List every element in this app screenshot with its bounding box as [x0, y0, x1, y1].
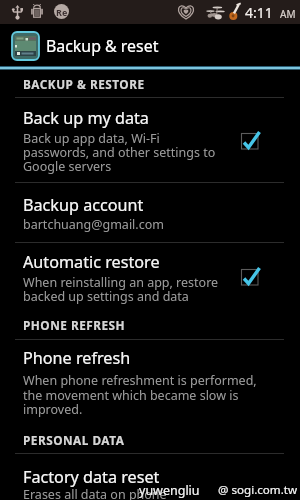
staticText: passwords, and other settings to: [23, 144, 216, 161]
button[interactable]: Backup & reset: [0, 24, 300, 66]
button[interactable]: Toggle Back up my data: [237, 129, 263, 155]
staticText: BACKUP & RESTORE: [23, 76, 145, 92]
staticText: improved.: [23, 401, 83, 418]
staticText: Re: [56, 6, 68, 18]
staticText: Erases all data on phone: [23, 486, 167, 500]
staticText: Back up my data: [23, 107, 149, 129]
staticText: Backup & reset: [46, 35, 159, 57]
staticText: When reinstalling an app, restore: [23, 274, 219, 291]
staticText: PHONE REFRESH: [23, 317, 126, 333]
staticText: backed up settings and data: [23, 288, 189, 305]
staticText: Backup account: [23, 194, 144, 216]
staticText: When phone refreshment is performed,: [23, 372, 257, 389]
staticText: AM: [280, 7, 296, 21]
staticText: 4:11: [245, 3, 273, 22]
staticText: yuwengliu: [139, 482, 200, 499]
staticText: Factory data reset: [23, 466, 160, 488]
staticText: PERSONAL DATA: [23, 432, 125, 448]
staticText: Google servers: [23, 158, 112, 175]
staticText: bartchuang@gmail.com: [23, 216, 164, 233]
staticText: Back up app data, Wi-Fi: [23, 130, 160, 147]
staticText: @ sogi.com.tw: [218, 482, 298, 498]
button[interactable]: Toggle Automatic restore: [237, 265, 263, 291]
staticText: the movement which became slow is: [23, 387, 239, 404]
staticText: Phone refresh: [23, 347, 131, 369]
staticText: Automatic restore: [23, 251, 160, 273]
